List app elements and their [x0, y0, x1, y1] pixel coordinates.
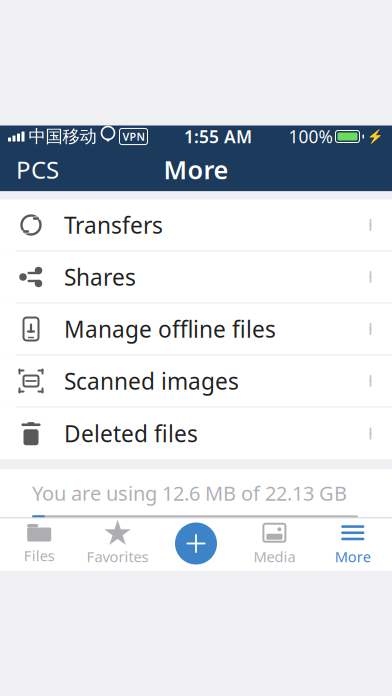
button[interactable]: Shares	[0, 251, 392, 303]
staticText: PCS	[16, 154, 59, 185]
staticText: Media	[253, 547, 295, 566]
button[interactable]: Add	[172, 519, 220, 567]
staticText: Files	[24, 546, 55, 565]
button[interactable]: Manage offline files	[0, 303, 392, 355]
staticText: Favorites	[87, 547, 149, 566]
button[interactable]: Transfers	[0, 199, 392, 251]
staticText: More	[335, 547, 371, 566]
button[interactable]: ★	[78, 518, 157, 570]
staticText: VPN	[122, 129, 144, 144]
staticText: You are using 12.6 MB of 22.13 GB	[32, 480, 347, 506]
staticText: Manage offline files	[64, 314, 276, 344]
button[interactable]: Files	[0, 518, 78, 570]
button[interactable]: PCS	[0, 147, 75, 191]
staticText: Scanned images	[64, 366, 239, 396]
staticText: 中国移动	[28, 126, 96, 147]
staticText: Shares	[64, 262, 136, 292]
staticText: 1:55 AM	[184, 125, 252, 148]
staticText: Deleted files	[64, 418, 198, 448]
staticText: 100%	[288, 125, 332, 148]
staticText: ⚡	[367, 129, 384, 144]
button[interactable]: More	[314, 518, 392, 570]
staticText: ★	[102, 513, 133, 552]
staticText: Transfers	[64, 210, 163, 240]
button[interactable]: Deleted files	[0, 407, 392, 459]
button[interactable]: Media	[235, 518, 314, 570]
button[interactable]: Scanned images	[0, 355, 392, 407]
staticText: More	[163, 153, 228, 186]
